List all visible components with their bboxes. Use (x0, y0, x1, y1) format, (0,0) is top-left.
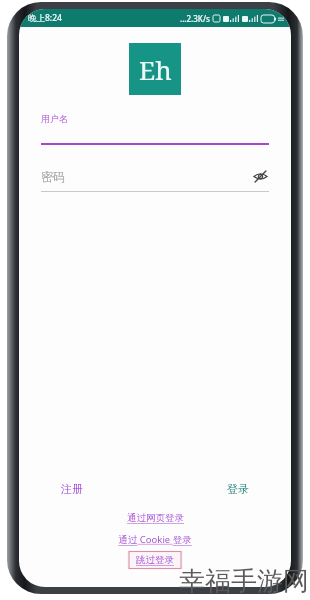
button[interactable]: 密码 (41, 167, 269, 192)
button[interactable]: 通过 Cookie 登录 (112, 531, 198, 548)
staticText: 密码 (41, 169, 251, 184)
button[interactable]: Show password (251, 167, 269, 185)
staticText: 跳过登录 (136, 554, 174, 566)
staticText: Eh (139, 52, 172, 87)
staticText: 幸福手游网 (179, 565, 309, 598)
button[interactable]: 用户名 (41, 113, 269, 145)
staticText: 通过网页登录 (127, 512, 184, 524)
button[interactable]: 登录 (221, 478, 255, 500)
staticText: ...2.3K/s (180, 13, 210, 24)
button[interactable]: 跳过登录 (127, 551, 183, 569)
staticText: 通过 Cookie 登录 (118, 533, 192, 546)
button[interactable]: 注册 (55, 478, 89, 500)
staticText: 注册 (61, 482, 83, 496)
staticText: 晚上8:24 (28, 12, 62, 24)
button[interactable]: 通过网页登录 (121, 510, 190, 526)
staticText: 登录 (227, 482, 249, 496)
staticText: 用户名 (41, 113, 68, 124)
